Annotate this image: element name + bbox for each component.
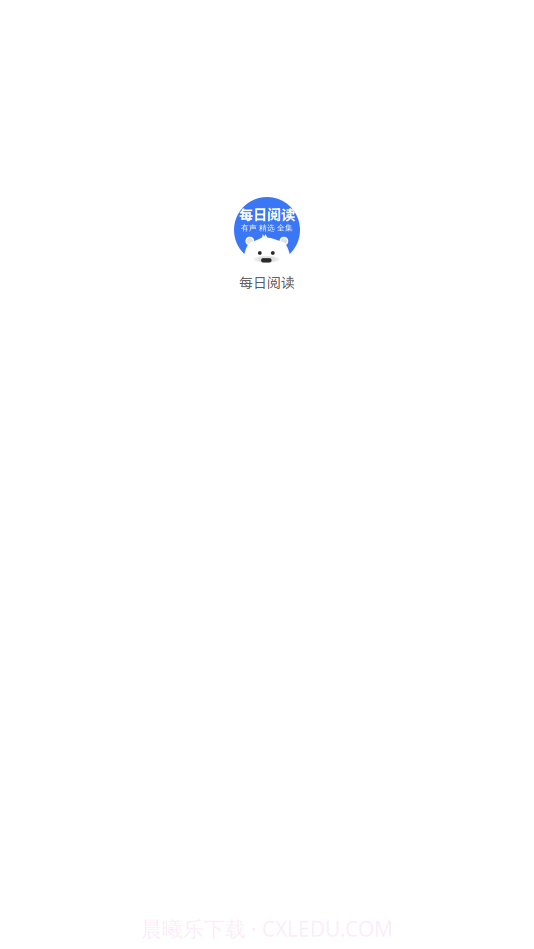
staticText: 晨曦乐下载 · CXLEDU.COM xyxy=(141,914,393,943)
staticText: 每日阅读 xyxy=(239,204,295,224)
staticText: 每日阅读 xyxy=(239,272,295,292)
staticText: 有声 精选 全集 xyxy=(241,223,293,233)
